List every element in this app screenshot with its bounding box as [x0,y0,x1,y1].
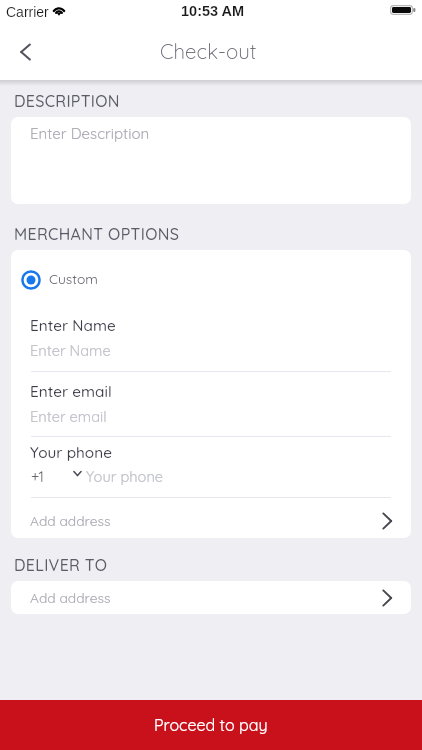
staticText: Add address [30,589,111,606]
button[interactable]: Back [4,30,48,74]
staticText: 10:53 AM [181,3,245,19]
button[interactable]: Enter Description [11,117,411,204]
button[interactable]: Proceed to pay [0,700,422,750]
staticText: Custom [49,270,98,287]
staticText: +1 [31,467,44,485]
staticText: Add address [30,512,111,529]
other: Open [381,511,393,531]
staticText: Your phone [30,443,112,462]
other: Open [381,588,393,608]
button[interactable]: Add address [11,503,411,538]
staticText: Your phone [86,467,164,485]
button[interactable]: Custom [11,260,411,300]
staticText: DESCRIPTION [14,91,120,111]
staticText: Carrier [6,4,49,20]
staticText: Enter Description [30,124,150,143]
staticText: Proceed to pay [154,715,268,735]
staticText: Enter Name [30,341,111,359]
staticText: Enter email [30,382,112,401]
staticText: DELIVER TO [14,555,108,575]
staticText: Enter email [30,407,107,425]
staticText: Check-out [160,38,257,64]
button[interactable]: Add address [11,581,411,614]
staticText: MERCHANT OPTIONS [14,224,180,244]
staticText: Enter Name [30,316,116,335]
